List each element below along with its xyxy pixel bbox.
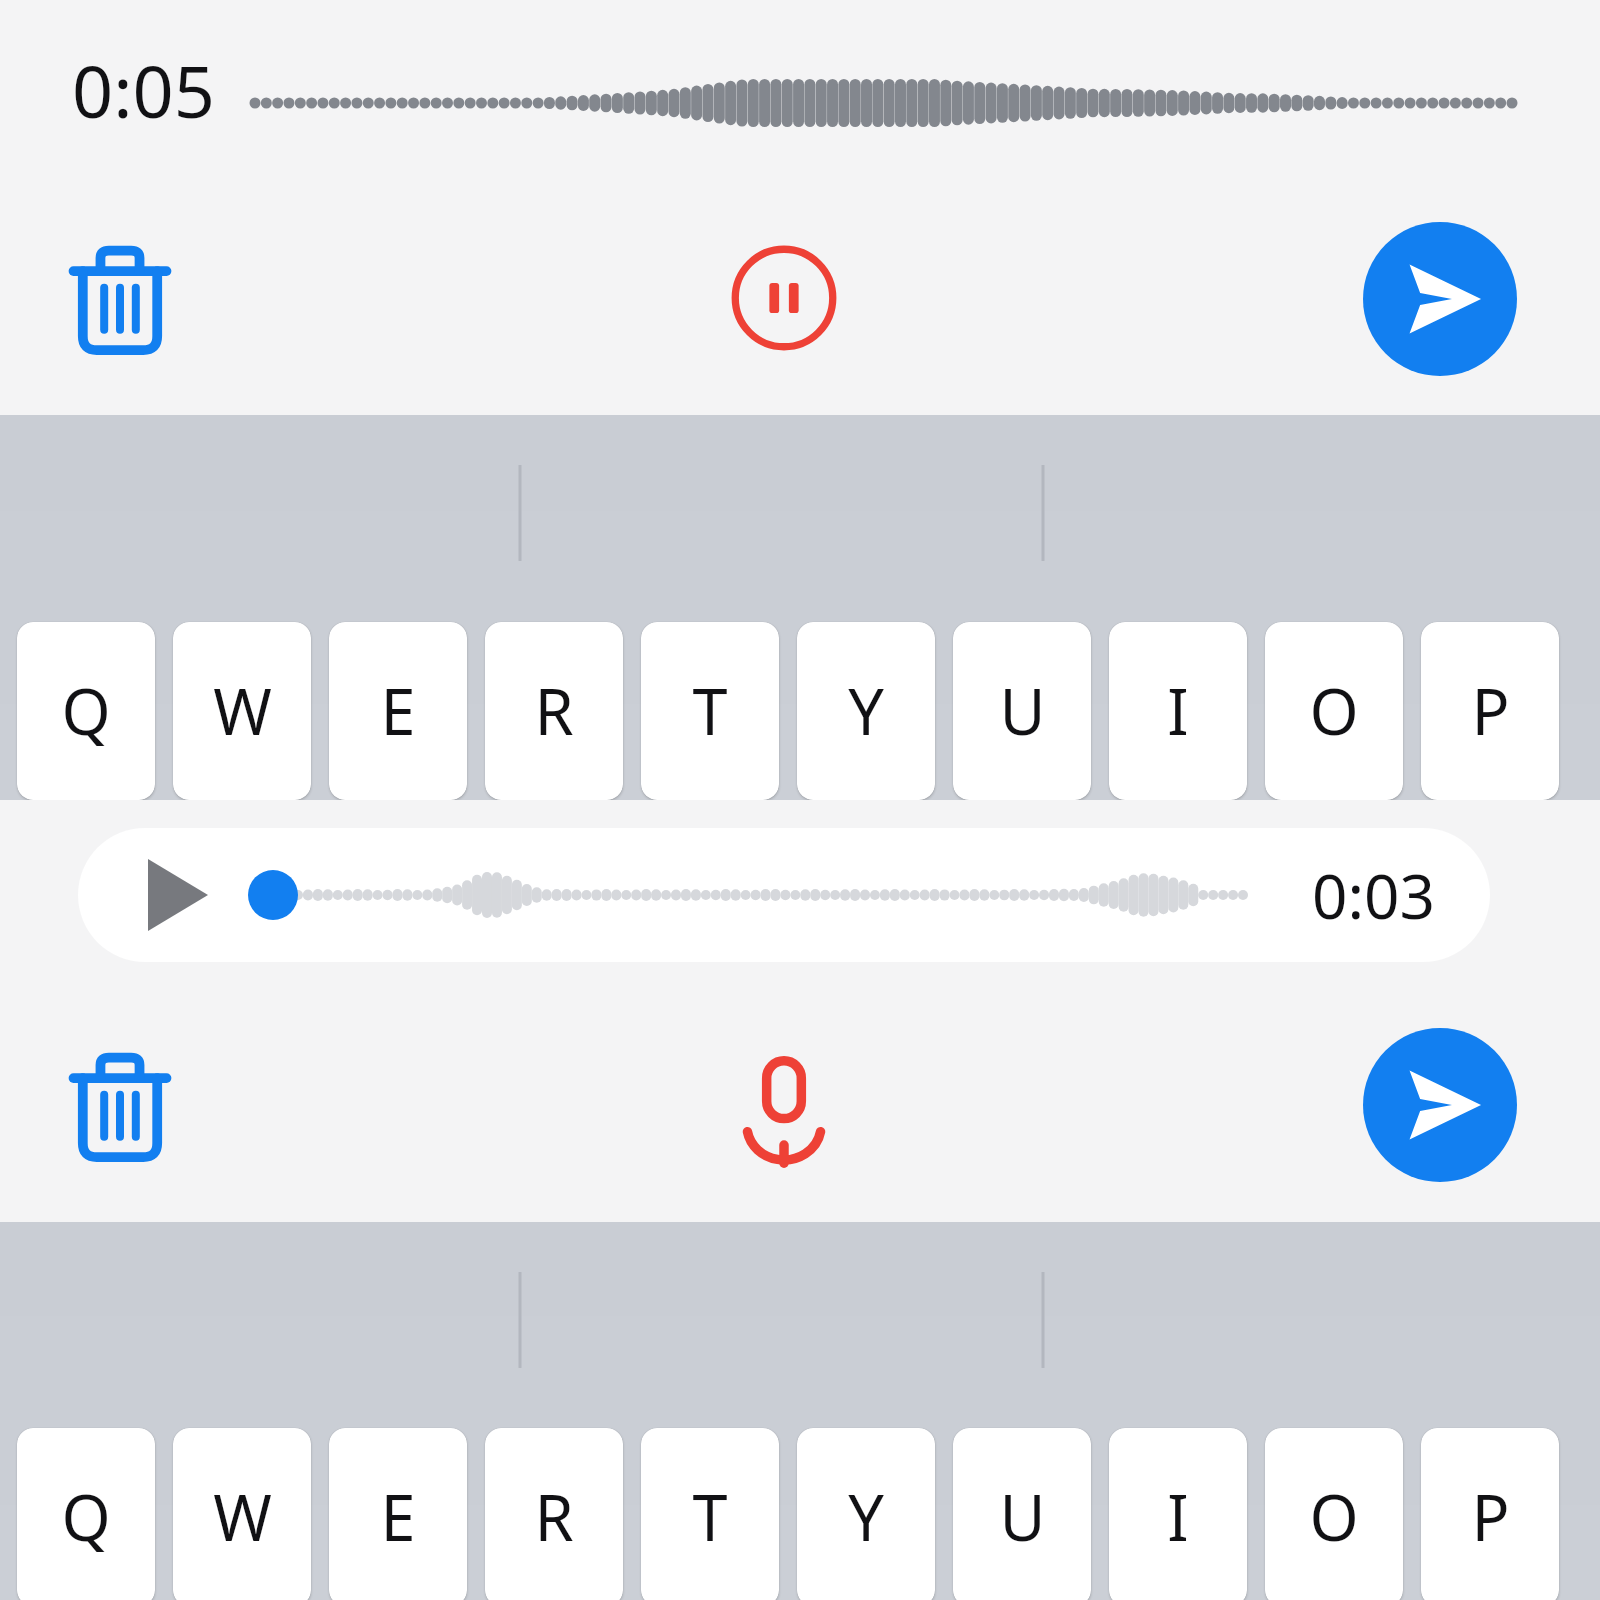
staticText: T: [692, 668, 728, 754]
button[interactable]: U: [953, 622, 1091, 800]
staticText: Y: [848, 668, 884, 754]
button[interactable]: Delete recording: [45, 1031, 195, 1181]
button[interactable]: P: [1421, 622, 1559, 800]
button[interactable]: Pause recording: [709, 223, 859, 373]
button[interactable]: R: [485, 622, 623, 800]
button[interactable]: W: [173, 1428, 311, 1600]
staticText: U: [999, 668, 1046, 754]
staticText: O: [1309, 1474, 1359, 1560]
staticText: W: [213, 1474, 272, 1560]
button[interactable]: Y: [797, 622, 935, 800]
button[interactable]: O: [1265, 1428, 1403, 1600]
button[interactable]: I: [1109, 1428, 1247, 1600]
button[interactable]: Record: [709, 1031, 859, 1181]
staticText: U: [999, 1474, 1046, 1560]
staticText: P: [1471, 668, 1510, 754]
button[interactable]: O: [1265, 622, 1403, 800]
staticText: T: [692, 1474, 728, 1560]
button[interactable]: Send: [1363, 222, 1517, 376]
staticText: 0:03: [1312, 853, 1436, 937]
button[interactable]: W: [173, 622, 311, 800]
button[interactable]: E: [329, 1428, 467, 1600]
staticText: Q: [61, 668, 111, 754]
staticText: R: [534, 1474, 574, 1560]
button[interactable]: R: [485, 1428, 623, 1600]
button[interactable]: Delete recording: [45, 224, 195, 374]
button[interactable]: E: [329, 622, 467, 800]
staticText: Q: [61, 1474, 111, 1560]
staticText: P: [1471, 1474, 1510, 1560]
staticText: R: [534, 668, 574, 754]
button[interactable]: I: [1109, 622, 1247, 800]
staticText: E: [380, 1474, 416, 1560]
button[interactable]: T: [641, 1428, 779, 1600]
staticText: 0:05: [72, 41, 215, 139]
button[interactable]: Q: [17, 1428, 155, 1600]
button[interactable]: Send: [1363, 1028, 1517, 1182]
staticText: I: [1167, 668, 1189, 754]
button[interactable]: T: [641, 622, 779, 800]
button[interactable]: 0:03: [78, 828, 1490, 962]
button[interactable]: Y: [797, 1428, 935, 1600]
staticText: Y: [848, 1474, 884, 1560]
button[interactable]: P: [1421, 1428, 1559, 1600]
button[interactable]: Q: [17, 622, 155, 800]
button[interactable]: U: [953, 1428, 1091, 1600]
staticText: W: [213, 668, 272, 754]
staticText: O: [1309, 668, 1359, 754]
staticText: I: [1167, 1474, 1189, 1560]
staticText: E: [380, 668, 416, 754]
